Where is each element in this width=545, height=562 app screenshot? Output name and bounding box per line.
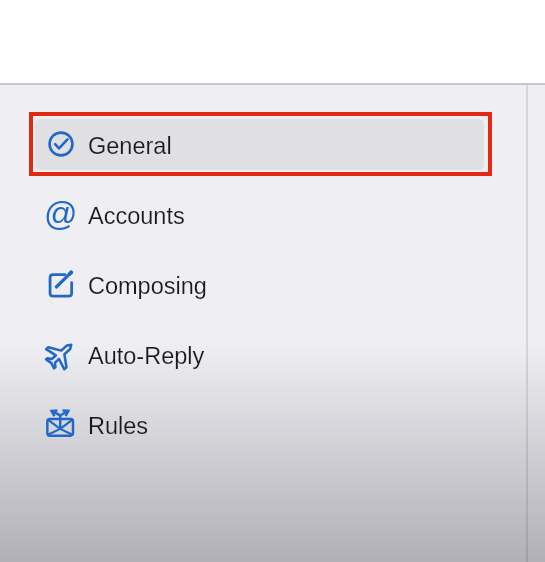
button[interactable]: Rules — [33, 396, 488, 452]
staticText: Composing — [88, 273, 207, 299]
staticText: Accounts — [88, 203, 185, 229]
button[interactable]: @ — [33, 186, 488, 242]
staticText: Rules — [88, 413, 149, 439]
other: Highlighted: General — [29, 112, 492, 176]
button[interactable]: Composing — [33, 256, 488, 312]
staticText: Auto-Reply — [88, 343, 205, 369]
button[interactable]: General — [33, 116, 488, 172]
staticText: @ — [44, 195, 78, 232]
button[interactable]: Auto-Reply — [33, 326, 488, 382]
staticText: General — [88, 133, 172, 159]
